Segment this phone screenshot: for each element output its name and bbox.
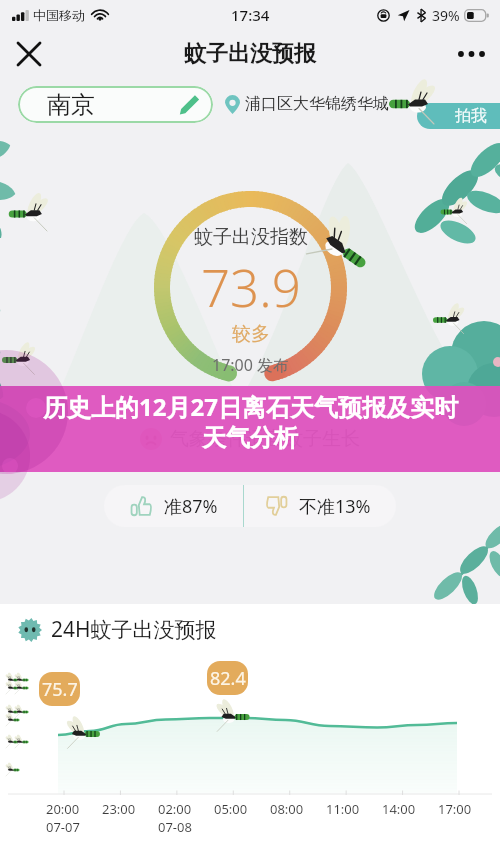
button[interactable]: 南京 xyxy=(18,86,213,123)
staticText: 24H蚊子出没预报 xyxy=(51,615,217,644)
staticText: 蚊子出没指数 xyxy=(194,225,308,249)
staticText: 蚊子出没预报 xyxy=(184,40,316,68)
staticText: 气象条件适宜蚊子生长 xyxy=(170,427,360,451)
staticText: 17:00 发布 xyxy=(212,354,290,376)
staticText: 23:00 xyxy=(102,800,136,818)
staticText: 历史上的12月27日离石天气预报及实时 xyxy=(43,390,458,423)
staticText: 14:00 xyxy=(382,800,416,818)
staticText: 拍我 xyxy=(455,106,487,126)
staticText: 11:00 xyxy=(326,800,360,818)
staticText: 较多 xyxy=(232,322,270,346)
staticText: 02:00 xyxy=(158,800,192,818)
button[interactable]: 关闭 xyxy=(7,32,51,76)
staticText: 准87% xyxy=(164,494,218,519)
staticText: 浦口区大华锦绣华城 xyxy=(245,94,389,114)
staticText: 17:00 xyxy=(438,800,472,818)
button[interactable]: 更多 xyxy=(449,32,493,76)
button[interactable]: 不准13% xyxy=(244,485,396,527)
staticText: 75.7 xyxy=(42,677,78,702)
button[interactable]: 准87% xyxy=(104,485,243,527)
staticText: 17:34 xyxy=(231,5,270,25)
staticText: 82.4 xyxy=(210,666,246,691)
staticText: 中国移动 xyxy=(33,7,85,23)
staticText: 20:00 xyxy=(46,800,80,818)
staticText: 南京 xyxy=(47,90,95,120)
staticText: 39% xyxy=(432,6,460,25)
staticText: 73.9 xyxy=(201,252,301,321)
button[interactable]: 拍我 xyxy=(417,103,500,129)
staticText: 08:00 xyxy=(270,800,304,818)
staticText: 07-08 xyxy=(158,818,192,836)
staticText: 05:00 xyxy=(214,800,248,818)
staticText: 天气分析 xyxy=(202,423,298,453)
staticText: 不准13% xyxy=(299,494,371,519)
staticText: 07-07 xyxy=(46,818,80,836)
